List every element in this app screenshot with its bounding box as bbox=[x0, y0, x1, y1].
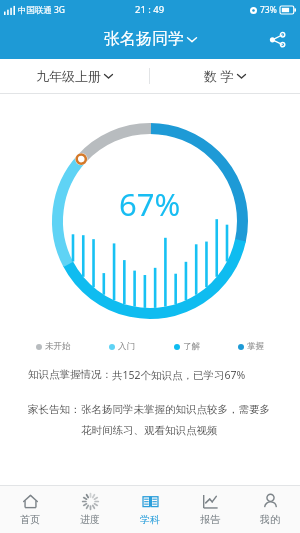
staticText: 知识点掌握情况： bbox=[28, 368, 112, 381]
staticText: 掌握 bbox=[247, 341, 264, 352]
button[interactable]: 我的 bbox=[240, 486, 300, 533]
staticText: 张名扬同学 bbox=[104, 29, 184, 49]
staticText: 报告 bbox=[200, 513, 220, 526]
staticText: 了解 bbox=[183, 341, 200, 352]
button[interactable]: 进度 bbox=[60, 486, 120, 533]
staticText: 学科 bbox=[140, 513, 160, 526]
staticText: 入门 bbox=[118, 341, 135, 352]
button[interactable]: 九年级上册 bbox=[0, 59, 149, 93]
staticText: 3G bbox=[54, 4, 66, 16]
staticText: 九年级上册 bbox=[36, 68, 101, 84]
staticText: 21 : 49 bbox=[135, 3, 165, 16]
staticText: 中国联通 bbox=[18, 5, 52, 16]
staticText: 张名扬同学未掌握的知识点较多，需要多花时间练习、观看知识点视频 bbox=[81, 403, 280, 437]
staticText: 我的 bbox=[260, 513, 280, 526]
button[interactable]: 首页 bbox=[0, 486, 60, 533]
button[interactable]: 学科 bbox=[120, 486, 180, 533]
staticText: 未开始 bbox=[45, 341, 71, 352]
button[interactable]: 报告 bbox=[180, 486, 240, 533]
staticText: 进度 bbox=[80, 513, 100, 526]
button[interactable]: 张名扬同学 bbox=[98, 27, 203, 51]
staticText: 67% bbox=[119, 183, 181, 225]
staticText: 数 学 bbox=[204, 67, 234, 85]
button[interactable]: Share bbox=[263, 25, 292, 54]
button[interactable]: 数 学 bbox=[150, 59, 300, 93]
staticText: 73% bbox=[260, 4, 277, 16]
staticText: 家长告知： bbox=[28, 403, 81, 416]
staticText: 首页 bbox=[20, 513, 40, 526]
staticText: 共152个知识点，已学习67% bbox=[112, 368, 246, 382]
